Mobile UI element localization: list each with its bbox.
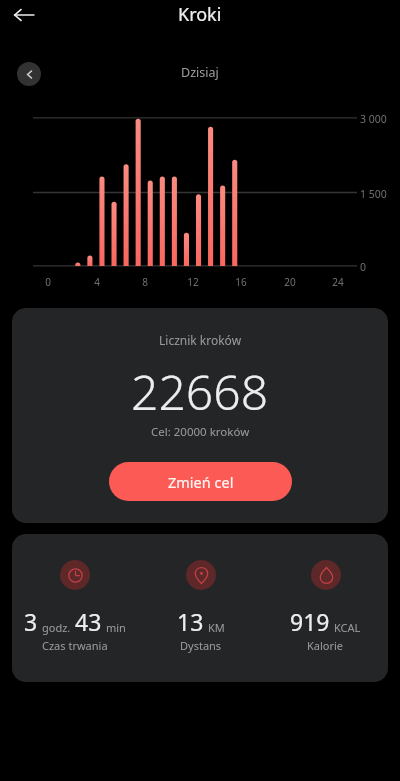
staticText: Czas trwania [42,638,108,653]
staticText: Cel: 20000 kroków [151,424,250,440]
staticText: Licznik kroków [159,332,242,348]
staticText: 22668 [131,359,269,424]
staticText: Kroki [178,2,222,27]
staticText: 919 [290,606,330,637]
staticText: 0 [36,275,60,289]
staticText: Zmień cel [168,472,234,492]
staticText: 24 [326,275,350,289]
staticText: KCAL [334,620,361,635]
staticText: 3 [24,606,38,637]
staticText: 1 500 [360,187,387,201]
staticText: 8 [133,275,157,289]
staticText: godz. [42,620,71,635]
staticText: 0 [360,260,367,274]
button[interactable]: Previous day [17,62,41,86]
staticText: Dystans [180,638,222,653]
staticText: 43 [75,606,102,637]
staticText: 3 000 [360,112,387,126]
staticText: 12 [181,275,205,289]
button[interactable]: Back [6,1,42,29]
staticText: min [106,620,126,635]
staticText: KM [208,620,225,635]
staticText: 16 [229,275,253,289]
staticText: Dzisiaj [181,64,219,81]
staticText: 4 [85,275,109,289]
staticText: 20 [278,275,302,289]
button[interactable]: Zmień cel [109,462,292,501]
staticText: Kalorie [307,638,344,653]
staticText: 13 [177,606,204,637]
